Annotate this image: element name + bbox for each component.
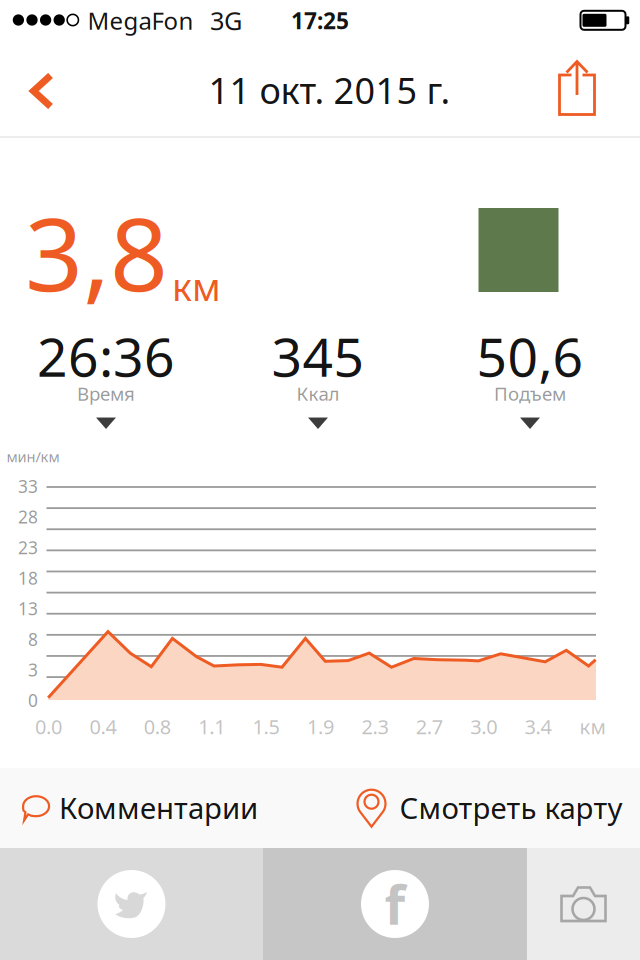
staticText: 23	[18, 536, 38, 559]
button[interactable]: Share on Twitter	[0, 848, 263, 960]
staticText: мин/км	[6, 447, 59, 466]
staticText: 345	[271, 321, 364, 391]
button[interactable]: Смотреть карту	[330, 768, 640, 848]
staticText: 2.7	[416, 713, 443, 740]
staticText: 18	[18, 566, 38, 589]
staticText: Подъем	[494, 381, 566, 406]
staticText: 28	[18, 505, 38, 528]
staticText: 0.4	[89, 713, 116, 740]
staticText: 8	[28, 628, 38, 651]
staticText: 1.1	[198, 713, 225, 740]
staticText: Комментарии	[59, 788, 258, 827]
staticText: 3G	[210, 4, 242, 37]
staticText: Время	[77, 381, 135, 406]
staticText: 33	[18, 475, 38, 498]
staticText: 0.8	[144, 713, 171, 740]
staticText: 3.0	[470, 713, 497, 740]
staticText: 3	[28, 658, 38, 681]
button[interactable]: Share	[534, 45, 620, 131]
staticText: 50,6	[476, 321, 583, 391]
staticText: 3,8	[25, 185, 168, 319]
staticText: 0.0	[35, 713, 62, 740]
staticText: Смотреть карту	[399, 788, 622, 827]
staticText: 13	[18, 597, 38, 620]
button[interactable]: Back	[0, 48, 85, 134]
staticText: км	[579, 713, 605, 740]
staticText: 0	[28, 689, 38, 712]
staticText: 26:36	[37, 321, 175, 391]
staticText: 1.9	[307, 713, 334, 740]
staticText: 17:25	[291, 5, 349, 35]
staticText: MegaFon	[87, 5, 193, 36]
staticText: 11 окт. 2015 г.	[208, 66, 450, 114]
staticText: f	[384, 869, 405, 939]
button[interactable]: Share on Facebook	[263, 848, 527, 960]
staticText: 3.4	[525, 713, 552, 740]
staticText: км	[172, 262, 221, 311]
staticText: 1.5	[253, 713, 280, 740]
staticText: 2.3	[361, 713, 388, 740]
button[interactable]: Camera	[527, 848, 640, 960]
staticText: Ккал	[296, 381, 339, 406]
button[interactable]: Комментарии	[0, 768, 330, 848]
